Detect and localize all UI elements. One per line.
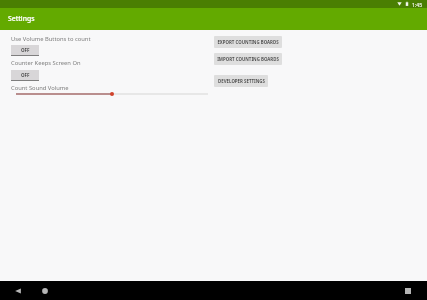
button[interactable]: Back [11, 284, 25, 298]
staticText: DEVELOPER SETTINGS [218, 78, 265, 84]
button[interactable]: Recent apps [401, 284, 415, 298]
staticText: EXPORT COUNTING BOARDS [217, 39, 279, 45]
button[interactable]: Counter Keeps Screen On: OFF [11, 70, 39, 81]
staticText: Use Volume Buttons to count [11, 35, 91, 43]
button[interactable]: DEVELOPER SETTINGS [214, 75, 268, 87]
button[interactable]: Home [38, 284, 52, 298]
staticText: Settings [8, 14, 35, 23]
button[interactable]: Count Sound Volume slider [16, 89, 208, 99]
button[interactable]: Use Volume Buttons to count: OFF [11, 45, 39, 56]
button[interactable]: IMPORT COUNTING BOARDS [214, 53, 282, 65]
button[interactable]: EXPORT COUNTING BOARDS [214, 36, 282, 48]
staticText: Counter Keeps Screen On [11, 59, 81, 67]
staticText: Count Sound Volume [11, 84, 69, 92]
staticText: IMPORT COUNTING BOARDS [217, 56, 279, 62]
staticText: OFF [21, 72, 30, 78]
staticText: OFF [21, 47, 30, 53]
staticText: 1:45 [412, 1, 423, 8]
